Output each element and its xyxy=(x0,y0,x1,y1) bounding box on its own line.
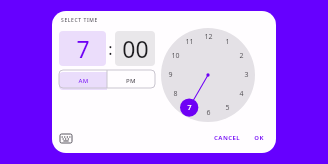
staticText: 2 xyxy=(239,51,244,61)
staticText: 3 xyxy=(244,70,249,80)
staticText: 6 xyxy=(206,108,211,118)
staticText: 5 xyxy=(225,103,230,113)
staticText: 00 xyxy=(122,33,149,64)
staticText: SELECT TIME xyxy=(61,17,98,24)
button[interactable]: PM xyxy=(107,72,155,90)
staticText: : xyxy=(108,38,113,60)
staticText: 12 xyxy=(204,32,213,42)
staticText: 9 xyxy=(168,70,173,80)
staticText: AM xyxy=(78,77,89,85)
staticText: 10 xyxy=(171,51,180,61)
button[interactable]: 00 xyxy=(115,31,155,66)
button[interactable]: Switch to text input xyxy=(58,130,74,146)
button[interactable]: Clock dial, 7 o'clock selected xyxy=(161,28,255,122)
button[interactable]: CANCEL xyxy=(210,131,244,145)
staticText: 1 xyxy=(225,37,230,47)
staticText: PM xyxy=(126,77,136,85)
staticText: OK xyxy=(254,134,264,142)
button[interactable]: 7 xyxy=(59,31,106,66)
staticText: CANCEL xyxy=(214,134,240,142)
staticText: 8 xyxy=(173,89,178,99)
staticText: 7 xyxy=(187,103,192,113)
staticText: 4 xyxy=(239,89,244,99)
button[interactable]: AM xyxy=(59,72,107,90)
button[interactable]: OK xyxy=(250,131,268,145)
staticText: 11 xyxy=(185,37,194,47)
staticText: 7 xyxy=(76,33,90,64)
